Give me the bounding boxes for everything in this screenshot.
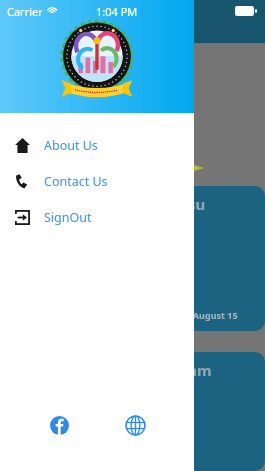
- button[interactable]: Website: [117, 407, 153, 443]
- staticText: SignOut: [44, 209, 92, 226]
- button[interactable]: About Us: [0, 127, 194, 163]
- button[interactable]: Facebook: [41, 407, 77, 443]
- staticText: Carrier: [7, 4, 43, 19]
- button[interactable]: Contact Us: [0, 163, 194, 199]
- button[interactable]: am: [186, 352, 265, 471]
- staticText: About Us: [44, 137, 98, 154]
- staticText: am: [188, 360, 212, 380]
- button[interactable]: su: [186, 186, 265, 331]
- staticText: Contact Us: [44, 173, 108, 190]
- button[interactable]: SignOut: [0, 199, 194, 235]
- staticText: su: [188, 194, 206, 214]
- staticText: 1:04 PM: [96, 4, 138, 19]
- staticText: : August 15: [188, 309, 238, 321]
